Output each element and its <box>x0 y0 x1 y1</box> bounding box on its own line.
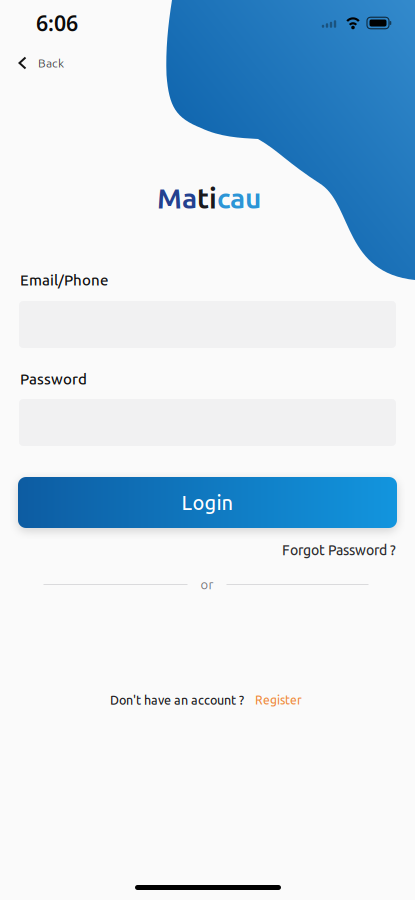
staticText: Password <box>20 371 87 387</box>
staticText: Ma <box>157 182 197 214</box>
button[interactable]: Login <box>18 477 397 528</box>
staticText: Don't have an account ? <box>110 693 244 707</box>
staticText: ti <box>197 182 217 214</box>
staticText: Forgot Password ? <box>282 542 396 558</box>
staticText: Email/Phone <box>20 272 108 288</box>
staticText: Register <box>255 693 302 707</box>
staticText: Back <box>38 56 64 70</box>
staticText: Login <box>181 491 233 514</box>
staticText: cau <box>217 182 261 214</box>
button[interactable]: Back <box>18 50 88 76</box>
button[interactable]: Forgot Password ? <box>196 540 396 560</box>
staticText: or <box>200 577 213 592</box>
button[interactable]: Register <box>255 693 302 707</box>
staticText: 6:06 <box>36 9 78 37</box>
